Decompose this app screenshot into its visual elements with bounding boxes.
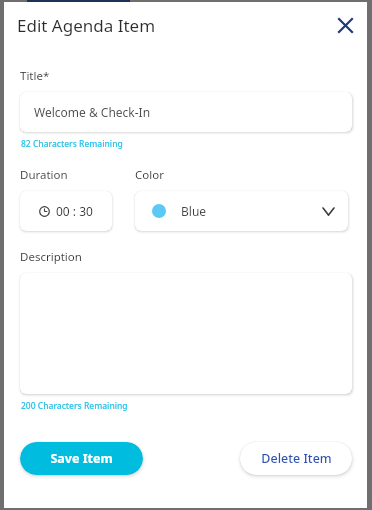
staticText: 82 Characters Remaining xyxy=(21,138,123,150)
staticText: Duration xyxy=(20,167,68,183)
staticText: Color xyxy=(135,167,164,183)
staticText: Blue xyxy=(181,203,207,219)
staticText: Delete Item xyxy=(261,450,332,467)
staticText: Edit Agenda Item xyxy=(17,14,156,37)
staticText: Welcome & Check-In xyxy=(34,104,151,120)
staticText: Save Item xyxy=(50,450,113,467)
button[interactable]: Close xyxy=(330,10,360,40)
staticText: 200 Characters Remaining xyxy=(21,400,128,412)
staticText: Title* xyxy=(20,68,50,84)
button[interactable]: Welcome & Check-In xyxy=(20,92,352,132)
staticText: Description xyxy=(20,249,82,265)
button[interactable]: Save Item xyxy=(20,442,143,475)
staticText: 00 : 30 xyxy=(56,203,93,219)
button[interactable]: Delete Item xyxy=(240,442,352,475)
button[interactable]: Blue xyxy=(135,191,348,231)
button[interactable]: 00 : 30 xyxy=(20,191,112,231)
